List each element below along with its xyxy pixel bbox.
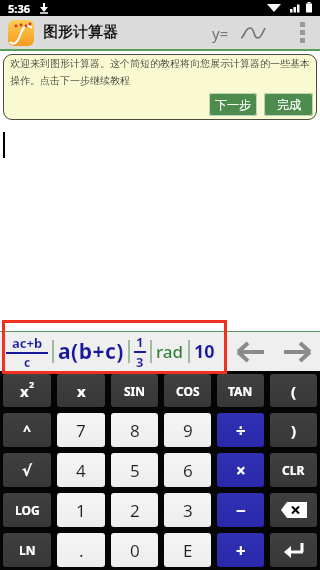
staticText: ^ bbox=[23, 421, 32, 440]
staticText: − bbox=[236, 499, 246, 522]
staticText: √ bbox=[22, 462, 33, 479]
button[interactable] bbox=[278, 332, 316, 371]
staticText: a(b+c) bbox=[58, 337, 124, 366]
staticText: 2 bbox=[130, 499, 140, 522]
staticText: 欢迎来到图形计算器。这个简短的教程将向您展示计算器的一些基本 bbox=[10, 57, 310, 70]
staticText: 10 bbox=[194, 339, 215, 364]
button[interactable]: x bbox=[3, 374, 51, 407]
staticText: LOG bbox=[15, 502, 40, 518]
button[interactable]: 1 bbox=[57, 493, 105, 527]
button[interactable]: 2 bbox=[111, 493, 158, 527]
staticText: ) bbox=[291, 420, 297, 440]
button[interactable] bbox=[270, 493, 317, 527]
button[interactable]: ÷ bbox=[217, 413, 264, 447]
button[interactable]: 3 bbox=[164, 493, 211, 527]
button[interactable]: SIN bbox=[111, 374, 158, 407]
staticText: 2 bbox=[29, 378, 35, 390]
staticText: 5:36 bbox=[8, 1, 30, 16]
button[interactable]: CLR bbox=[270, 453, 317, 487]
staticText: 3 bbox=[183, 499, 193, 522]
staticText: y= bbox=[212, 23, 229, 43]
staticText: 9 bbox=[183, 419, 193, 442]
button[interactable]: rad bbox=[156, 340, 184, 363]
button[interactable]: a(b+c) bbox=[58, 337, 124, 366]
button[interactable]: LN bbox=[3, 533, 51, 567]
button[interactable]: 7 bbox=[57, 413, 105, 447]
staticText: . bbox=[79, 539, 84, 562]
button[interactable]: E bbox=[164, 533, 211, 567]
staticText: rad bbox=[156, 340, 184, 363]
button[interactable] bbox=[232, 332, 270, 371]
button[interactable]: 10 bbox=[194, 339, 215, 364]
staticText: CLR bbox=[282, 462, 305, 478]
button[interactable]: y= bbox=[204, 16, 236, 49]
button[interactable]: x bbox=[57, 374, 105, 407]
button[interactable]: 8 bbox=[111, 413, 158, 447]
staticText: 0 bbox=[130, 539, 140, 562]
staticText: 6 bbox=[183, 459, 193, 482]
staticText: x bbox=[20, 381, 29, 401]
button[interactable]: 4 bbox=[57, 453, 105, 487]
button[interactable]: 下一步 bbox=[209, 93, 257, 116]
staticText: COS bbox=[176, 383, 200, 399]
staticText: 5 bbox=[130, 459, 140, 482]
staticText: x bbox=[77, 381, 86, 401]
staticText: 8 bbox=[130, 419, 140, 442]
button[interactable]: 6 bbox=[164, 453, 211, 487]
button[interactable] bbox=[270, 533, 317, 567]
button[interactable]: LOG bbox=[3, 493, 51, 527]
button[interactable]: ac+b bbox=[6, 334, 48, 370]
button[interactable]: ^ bbox=[3, 413, 51, 447]
button[interactable]: 1 bbox=[134, 333, 146, 371]
button[interactable]: 0 bbox=[111, 533, 158, 567]
button[interactable]: × bbox=[217, 453, 264, 487]
button[interactable]: TAN bbox=[217, 374, 264, 407]
button[interactable]: √ bbox=[3, 453, 51, 487]
staticText: 1 bbox=[76, 499, 86, 522]
button[interactable]: ( bbox=[270, 374, 317, 407]
staticText: TAN bbox=[228, 383, 253, 399]
staticText: 操作。点击下一步继续教程 bbox=[10, 74, 130, 87]
staticText: ac+b bbox=[12, 334, 43, 352]
staticText: ( bbox=[291, 381, 297, 401]
staticText: E bbox=[183, 539, 193, 562]
staticText: 7 bbox=[76, 419, 86, 442]
staticText: 图形计算器 bbox=[43, 23, 118, 42]
staticText: 4 bbox=[76, 459, 86, 482]
staticText: ÷ bbox=[236, 419, 246, 442]
staticText: SIN bbox=[124, 383, 146, 399]
button[interactable]: 9 bbox=[164, 413, 211, 447]
staticText: c bbox=[24, 354, 31, 370]
staticText: 1 bbox=[136, 333, 144, 351]
staticText: + bbox=[236, 539, 246, 562]
staticText: 完成 bbox=[277, 97, 301, 112]
button[interactable]: COS bbox=[164, 374, 211, 407]
staticText: × bbox=[236, 459, 246, 482]
button[interactable]: ) bbox=[270, 413, 317, 447]
staticText: 3 bbox=[136, 353, 144, 371]
button[interactable] bbox=[236, 16, 270, 49]
button[interactable]: 5 bbox=[111, 453, 158, 487]
staticText: 下一步 bbox=[215, 97, 251, 112]
button[interactable]: − bbox=[217, 493, 264, 527]
button[interactable]: 完成 bbox=[264, 93, 313, 116]
staticText: LN bbox=[19, 542, 36, 558]
button[interactable]: . bbox=[57, 533, 105, 567]
button[interactable] bbox=[284, 16, 320, 49]
button[interactable]: + bbox=[217, 533, 264, 567]
